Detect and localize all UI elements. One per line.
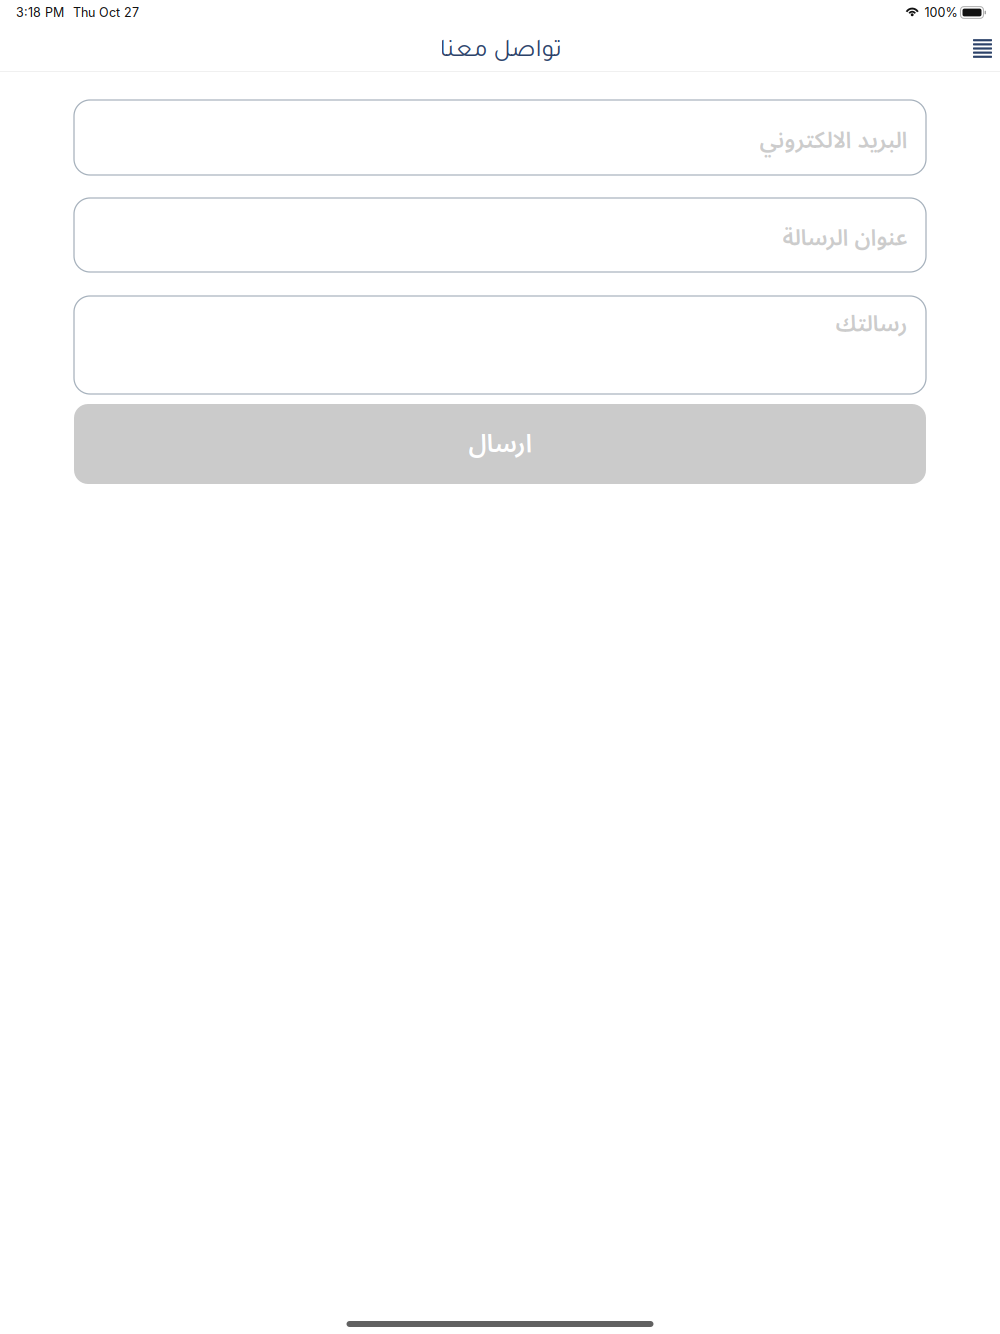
button[interactable]: ارسال [74,404,926,484]
button[interactable]: عنوان الرسالة [74,198,926,272]
button[interactable]: رسالتك [74,296,926,394]
staticText: البريد الالكتروني [759,117,907,164]
staticText: ارسال [468,417,532,471]
staticText: 3:18 PM [16,5,64,20]
button[interactable]: البريد الالكتروني [74,100,926,175]
button[interactable]: Menu [959,31,1000,71]
staticText: 100% [924,5,957,20]
staticText: Thu Oct 27 [73,5,139,20]
staticText: رسالتك [835,300,907,348]
staticText: تواصل معنا [439,40,561,65]
staticText: عنوان الرسالة [782,214,907,262]
